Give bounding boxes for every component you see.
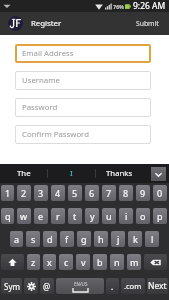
button[interactable]: The (0, 164, 47, 183)
staticText: 76% (113, 3, 124, 10)
button[interactable]: 6 (85, 185, 99, 201)
staticText: s (31, 233, 36, 245)
button[interactable]: Backspace (144, 254, 167, 270)
staticText: o (140, 210, 146, 222)
staticText: 2 (21, 187, 27, 199)
button[interactable]: s (26, 231, 40, 247)
button[interactable]: 9 (136, 185, 150, 201)
staticText: b (97, 256, 103, 268)
button[interactable]: .com (121, 278, 145, 294)
staticText: k (133, 233, 138, 245)
button[interactable]: More suggestions (151, 167, 166, 181)
staticText: EN/US (74, 281, 88, 287)
staticText: Confirm Password (22, 129, 89, 140)
button[interactable]: f (60, 231, 74, 247)
button[interactable]: Thanks (96, 164, 143, 183)
staticText: c (64, 256, 69, 268)
staticText: e (38, 210, 44, 222)
button[interactable]: y (85, 208, 99, 224)
button[interactable]: j (111, 231, 125, 247)
button[interactable]: l (145, 231, 159, 247)
button[interactable]: h (94, 231, 108, 247)
button[interactable]: 7 (102, 185, 116, 201)
button[interactable]: e (34, 208, 48, 224)
staticText: a (14, 233, 20, 245)
staticText: . (111, 281, 114, 292)
button[interactable]: z (27, 254, 40, 270)
button[interactable]: o (136, 208, 150, 224)
staticText: h (98, 233, 104, 245)
staticText: j (117, 233, 120, 245)
staticText: u (106, 210, 112, 222)
button[interactable]: k (128, 231, 142, 247)
button[interactable]: i (119, 208, 133, 224)
button[interactable]: Sym (1, 278, 22, 294)
button[interactable]: 0 (153, 185, 167, 201)
staticText: The (17, 168, 31, 179)
staticText: 3 (38, 187, 44, 199)
button[interactable]: r (51, 208, 65, 224)
button[interactable]: u (102, 208, 116, 224)
staticText: Password (22, 102, 58, 113)
button[interactable]: Submit (133, 15, 162, 32)
button[interactable]: 3 (34, 185, 48, 201)
staticText: I (70, 168, 73, 179)
button[interactable]: m (127, 254, 141, 270)
button[interactable]: w (17, 208, 31, 224)
button[interactable]: Settings (24, 278, 38, 294)
button[interactable]: Shift (1, 254, 24, 270)
staticText: Thanks (106, 168, 133, 179)
staticText: 9:26 AM (133, 0, 166, 12)
button[interactable]: 4 (51, 185, 65, 201)
button[interactable]: c (59, 254, 73, 270)
staticText: 5 (72, 187, 78, 199)
staticText: d (47, 233, 53, 245)
staticText: 9 (140, 187, 146, 199)
staticText: 0 (157, 187, 163, 199)
staticText: t (73, 210, 77, 222)
staticText: 8 (123, 187, 129, 199)
button[interactable]: q (1, 208, 14, 224)
staticText: n (114, 256, 120, 268)
staticText: g (81, 233, 87, 245)
staticText: @ (43, 281, 51, 292)
button[interactable]: 5 (68, 185, 82, 201)
staticText: f (65, 233, 69, 245)
button[interactable]: t (68, 208, 82, 224)
button[interactable]: p (153, 208, 167, 224)
staticText: Username (22, 75, 60, 86)
staticText: v (81, 256, 86, 268)
button[interactable]: I (48, 164, 95, 183)
button[interactable]: Confirm Password (15, 125, 151, 144)
button[interactable]: n (110, 254, 124, 270)
staticText: q (5, 210, 11, 222)
button[interactable]: a (10, 231, 23, 247)
staticText: 4 (55, 187, 61, 199)
button[interactable]: d (43, 231, 57, 247)
button[interactable]: Password (15, 98, 151, 117)
button[interactable]: b (93, 254, 107, 270)
button[interactable]: v (76, 254, 90, 270)
button[interactable]: . (106, 278, 119, 294)
staticText: 6 (89, 187, 95, 199)
button[interactable]: Username (15, 71, 151, 90)
staticText: m (130, 256, 139, 268)
staticText: p (157, 210, 163, 222)
staticText: x (47, 256, 52, 268)
staticText: .com (124, 281, 142, 291)
button[interactable]: @ (40, 278, 54, 294)
staticText: w (20, 210, 28, 222)
button[interactable]: 1 (1, 185, 14, 201)
staticText: Sym (4, 281, 20, 292)
staticText: 1 (5, 187, 11, 199)
button[interactable]: Next (147, 278, 168, 294)
staticText: r (56, 210, 60, 222)
button[interactable]: App logo (8, 16, 23, 31)
button[interactable]: 2 (17, 185, 31, 201)
button[interactable]: Space (56, 278, 104, 294)
button[interactable]: Email Address (15, 44, 151, 63)
button[interactable]: 8 (119, 185, 133, 201)
staticText: Next (148, 280, 167, 292)
button[interactable]: g (77, 231, 91, 247)
button[interactable]: x (43, 254, 56, 270)
